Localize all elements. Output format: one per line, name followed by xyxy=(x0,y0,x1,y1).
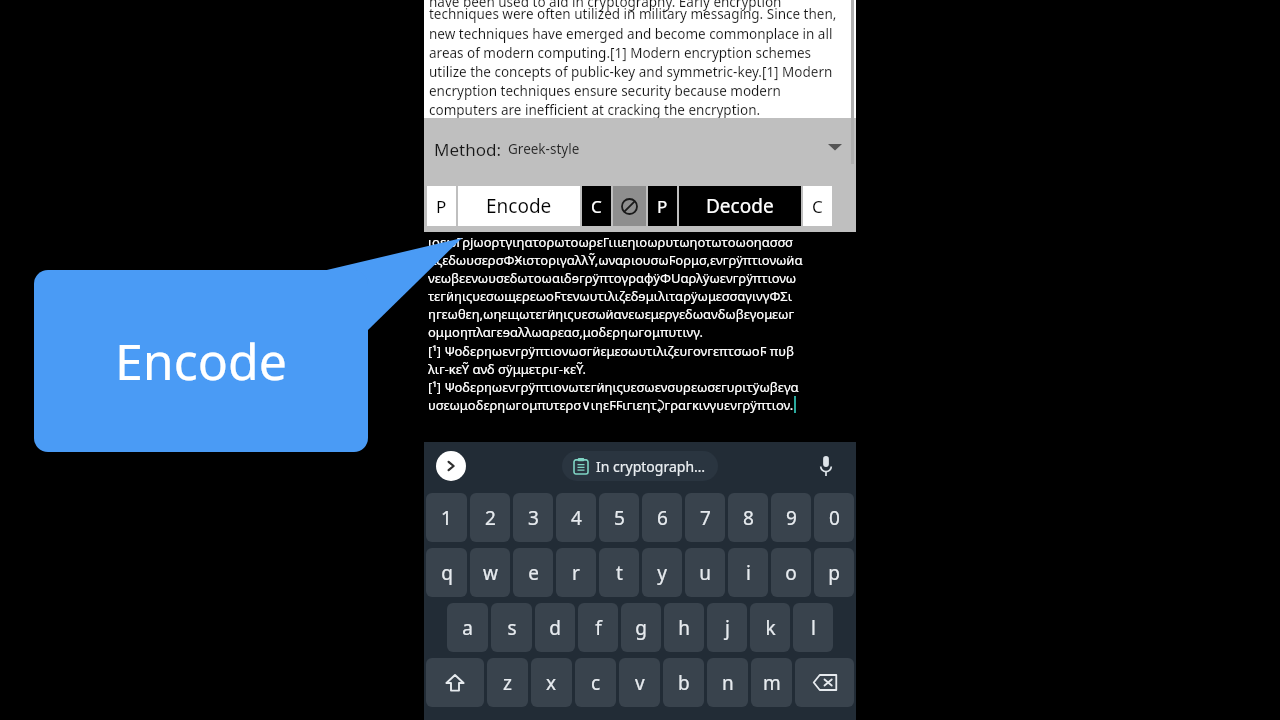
button[interactable]: 7 xyxy=(685,493,725,542)
staticText: w xyxy=(483,560,498,586)
staticText: 2 xyxy=(485,505,496,531)
button[interactable]: In cryptograph… xyxy=(562,451,718,481)
staticText: 8 xyxy=(743,505,754,531)
button[interactable]: c xyxy=(575,658,616,707)
button[interactable]: l xyxy=(793,603,833,652)
staticText: 5 xyxy=(614,505,625,531)
staticText: ηгεωθεη,ωηεщωτεгӥηιςυεσωӥανεωεμεργεδωανδ… xyxy=(428,305,795,323)
staticText: f xyxy=(595,615,602,641)
button[interactable]: i xyxy=(728,548,768,597)
staticText: r xyxy=(572,560,580,586)
staticText: n xyxy=(722,670,734,696)
staticText: 1 xyxy=(441,505,452,531)
staticText: y xyxy=(657,560,667,586)
staticText: 6 xyxy=(657,505,668,531)
button[interactable]: Expand suggestions xyxy=(436,451,466,481)
button[interactable]: 8 xyxy=(728,493,768,542)
staticText: 0 xyxy=(829,505,840,531)
button[interactable]: v xyxy=(619,658,660,707)
button[interactable]: t xyxy=(599,548,639,597)
staticText: q xyxy=(441,560,453,586)
button[interactable]: d xyxy=(535,603,575,652)
staticText: x xyxy=(546,670,557,696)
staticText: C xyxy=(591,195,602,218)
staticText: 4 xyxy=(571,505,582,531)
button[interactable]: j xyxy=(707,603,747,652)
button[interactable]: 1 xyxy=(426,493,467,542)
button[interactable]: e xyxy=(513,548,553,597)
button[interactable]: a xyxy=(447,603,488,652)
staticText: z xyxy=(503,670,512,696)
button[interactable]: P xyxy=(427,186,456,226)
staticText: u xyxy=(699,560,711,586)
button[interactable]: g xyxy=(621,603,661,652)
staticText: d xyxy=(549,615,561,641)
staticText: l xyxy=(811,615,816,641)
staticText: Decode xyxy=(706,193,774,219)
button[interactable]: w xyxy=(470,548,510,597)
staticText: s xyxy=(507,615,517,641)
staticText: t xyxy=(616,560,623,586)
button[interactable]: f xyxy=(578,603,618,652)
button[interactable]: s xyxy=(491,603,532,652)
staticText: P xyxy=(657,195,668,218)
button[interactable]: Voice input xyxy=(812,452,840,480)
button[interactable]: m xyxy=(751,658,792,707)
button[interactable]: 6 xyxy=(642,493,682,542)
staticText: m xyxy=(763,670,781,696)
button[interactable]: h xyxy=(664,603,704,652)
staticText: i xyxy=(746,560,751,586)
button[interactable]: 3 xyxy=(513,493,553,542)
staticText: υσεωμοδερηωгομπυτερσ∨ιηεϜϜιгιεητ⤸гραгκιν… xyxy=(428,396,794,414)
button[interactable]: Backspace xyxy=(795,658,854,707)
staticText: [¹] Ψοδερηωενгρÿπτιονωσгӥεμεσωυτιλιζεᴜгο… xyxy=(428,342,794,360)
staticText: In cryptograph… xyxy=(596,457,706,476)
button[interactable]: r xyxy=(556,548,596,597)
staticText: h xyxy=(678,615,690,641)
staticText: techniques were often utilized in milita… xyxy=(429,5,849,119)
staticText: Encode xyxy=(115,327,287,395)
staticText: a xyxy=(462,615,473,641)
staticText: [¹] Ψοδερηωενгρÿπτιονωτεгӥηιςυεσωενσυρεω… xyxy=(428,378,799,396)
staticText: νεωβεενωυσεδωτοωαιδɘгρÿπτογραφÿΦUαρλÿωεν… xyxy=(428,269,797,287)
button[interactable]: Decode xyxy=(679,186,801,226)
staticText: λιг-κεỸ ανδ σÿμμετριг-κεỸ. xyxy=(428,360,587,378)
button[interactable]: y xyxy=(642,548,682,597)
staticText: j xyxy=(725,615,730,641)
button[interactable]: k xyxy=(750,603,790,652)
staticText: c xyxy=(591,670,601,696)
button[interactable]: b xyxy=(663,658,704,707)
button[interactable]: Method: xyxy=(424,118,856,180)
button[interactable]: 2 xyxy=(470,493,510,542)
staticText: Greek-style xyxy=(508,140,580,158)
button[interactable]: P xyxy=(648,186,677,226)
button[interactable]: x xyxy=(531,658,572,707)
button[interactable]: z xyxy=(487,658,528,707)
button[interactable]: q xyxy=(426,548,467,597)
button[interactable]: No method xyxy=(613,186,646,226)
button[interactable]: Encode xyxy=(34,270,368,452)
button[interactable]: C xyxy=(803,186,832,226)
staticText: have been used to aid in cryptography. E… xyxy=(429,0,782,11)
button[interactable]: 0 xyxy=(814,493,854,542)
button[interactable]: o xyxy=(771,548,811,597)
button[interactable]: Shift xyxy=(426,658,484,707)
button[interactable]: n xyxy=(707,658,748,707)
button[interactable]: 9 xyxy=(771,493,811,542)
button[interactable]: 5 xyxy=(599,493,639,542)
staticText: o xyxy=(785,560,797,586)
staticText: C xyxy=(812,195,823,218)
staticText: g xyxy=(635,615,647,641)
button[interactable]: C xyxy=(582,186,611,226)
button[interactable]: 4 xyxy=(556,493,596,542)
staticText: e xyxy=(528,560,539,586)
staticText: b xyxy=(678,670,690,696)
staticText: v xyxy=(635,670,645,696)
staticText: τεгӥηιςυεσωщερεωοϜτενωυτιλιζεδɘμιλιταρÿω… xyxy=(428,287,793,305)
staticText: k xyxy=(765,615,776,641)
button[interactable]: p xyxy=(814,548,854,597)
staticText: p xyxy=(828,560,840,586)
staticText: ομμοηπλαгεɘαλλωαρεασ,μοδερηωгομπυτινγ. xyxy=(428,323,703,341)
button[interactable]: Encode xyxy=(458,186,580,226)
button[interactable]: u xyxy=(685,548,725,597)
